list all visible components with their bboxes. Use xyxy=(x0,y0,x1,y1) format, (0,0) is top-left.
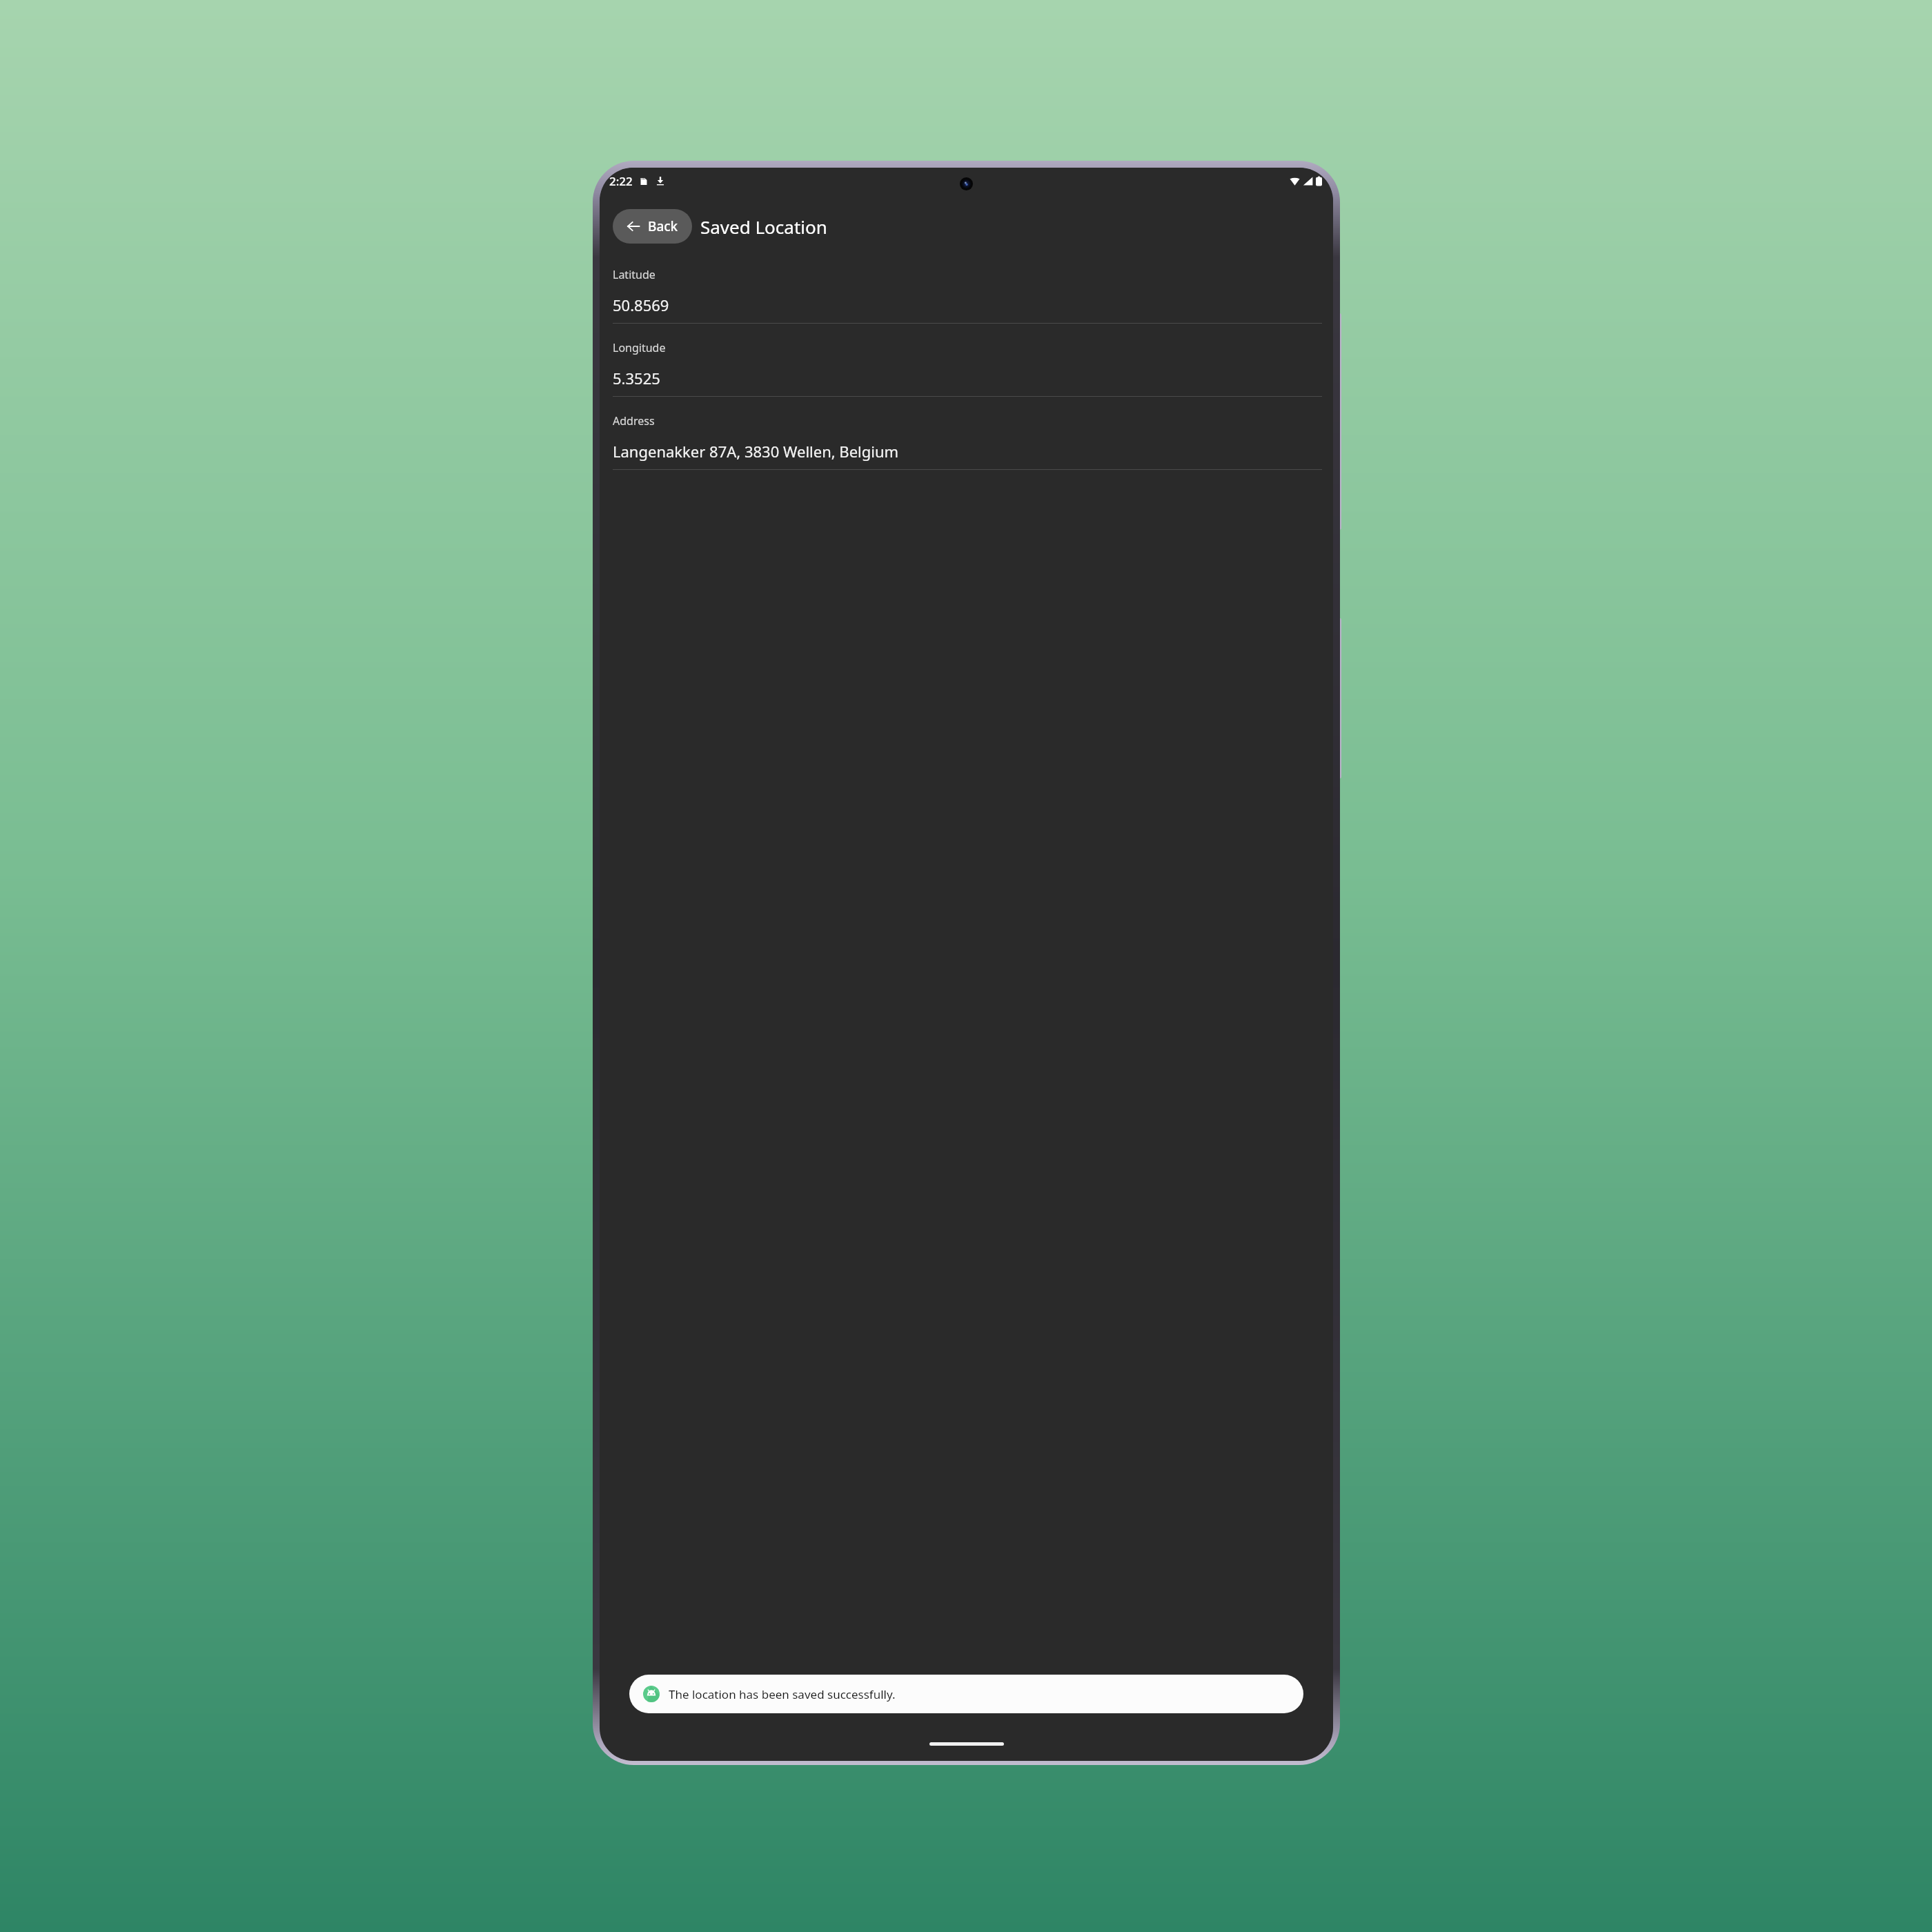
staticText: Latitude xyxy=(613,267,655,282)
staticText: Saved Location xyxy=(700,215,827,239)
staticText: Address xyxy=(613,413,655,428)
button[interactable]: The location has been saved successfully… xyxy=(629,1675,1303,1713)
button[interactable]: Langenakker 87A, 3830 Wellen, Belgium xyxy=(600,441,1333,462)
other: Home xyxy=(929,1742,1004,1746)
button[interactable]: 50.8569 xyxy=(600,295,1333,315)
button[interactable]: Back xyxy=(613,209,692,244)
staticText: The location has been saved successfully… xyxy=(669,1686,896,1702)
staticText: 2:22 xyxy=(609,173,633,189)
staticText: Back xyxy=(648,217,678,235)
staticText: Longitude xyxy=(613,340,666,355)
button[interactable]: 5.3525 xyxy=(600,368,1333,388)
